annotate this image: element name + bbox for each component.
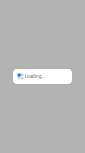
staticText: Loading... xyxy=(25,74,45,79)
